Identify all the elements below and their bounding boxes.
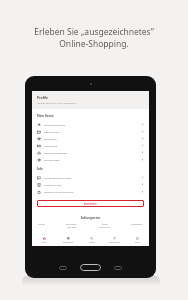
button[interactable]: Kontakt & Hilfe: [32, 181, 149, 188]
staticText: Erleben Sie „ausgezeichnetes“: [34, 26, 154, 38]
staticText: Profile: [37, 95, 49, 100]
staticText: Mein Konto: [37, 114, 54, 118]
button[interactable]: Häufig gestellte Fragen: [32, 174, 149, 181]
staticText: Häufig gestellte Fragen: [44, 176, 72, 179]
button[interactable]: Persönliche Daten: [32, 121, 149, 128]
button[interactable]: Start: [32, 235, 56, 246]
button[interactable]: Datenschutz & Sicherheit: [32, 188, 149, 195]
button[interactable]: Kreditkarte: [131, 223, 143, 226]
staticText: Info: [37, 167, 43, 171]
staticText: Start: [42, 241, 47, 244]
button[interactable]: Vorkasse: [67, 226, 77, 229]
button[interactable]: Lastschrift: [99, 226, 110, 229]
staticText: Korb: [135, 241, 140, 244]
button[interactable]: Kategorien: [56, 235, 80, 246]
button[interactable]: Rechnung: [66, 223, 77, 226]
button[interactable]: Bestellungen: [32, 128, 149, 135]
button[interactable]: PayPal: [38, 223, 45, 226]
button[interactable]: Home: [80, 264, 101, 271]
button[interactable]: Gutscheine: [32, 142, 149, 149]
staticText: Persönliche Daten: [44, 123, 66, 126]
staticText: Datenschutz & Sicherheit: [44, 190, 74, 193]
staticText: Gutscheine: [44, 144, 58, 147]
staticText: Kategorien: [63, 241, 74, 244]
staticText: Benachrichtigungen: [44, 151, 68, 154]
button[interactable]: Recents: [59, 266, 67, 270]
staticText: Kontakt & Hilfe: [44, 183, 62, 186]
staticText: Mein Konto: [109, 241, 120, 244]
button[interactable]: Einstellungen: [32, 156, 149, 163]
button[interactable]: Mein Konto: [103, 235, 126, 246]
staticText: Zahlungsarten: [32, 216, 149, 220]
button[interactable]: Anmelden: [37, 200, 144, 207]
button[interactable]: Raten: [102, 223, 108, 226]
staticText: Suche: [89, 241, 95, 244]
staticText: Merkzettel: [44, 137, 57, 140]
button[interactable]: Korb: [126, 235, 149, 246]
button[interactable]: Suche: [80, 235, 103, 246]
button[interactable]: Merkzettel: [32, 135, 149, 142]
staticText: Online-Shopping.: [59, 38, 129, 50]
button[interactable]: Back: [114, 266, 122, 270]
staticText: Anmelden: [84, 202, 97, 206]
staticText: Einstellungen: [44, 158, 60, 161]
staticText: Bestellungen: [44, 130, 60, 133]
staticText: Melden Sie sich an oder registrieren: [37, 102, 76, 105]
button[interactable]: Benachrichtigungen: [32, 149, 149, 156]
